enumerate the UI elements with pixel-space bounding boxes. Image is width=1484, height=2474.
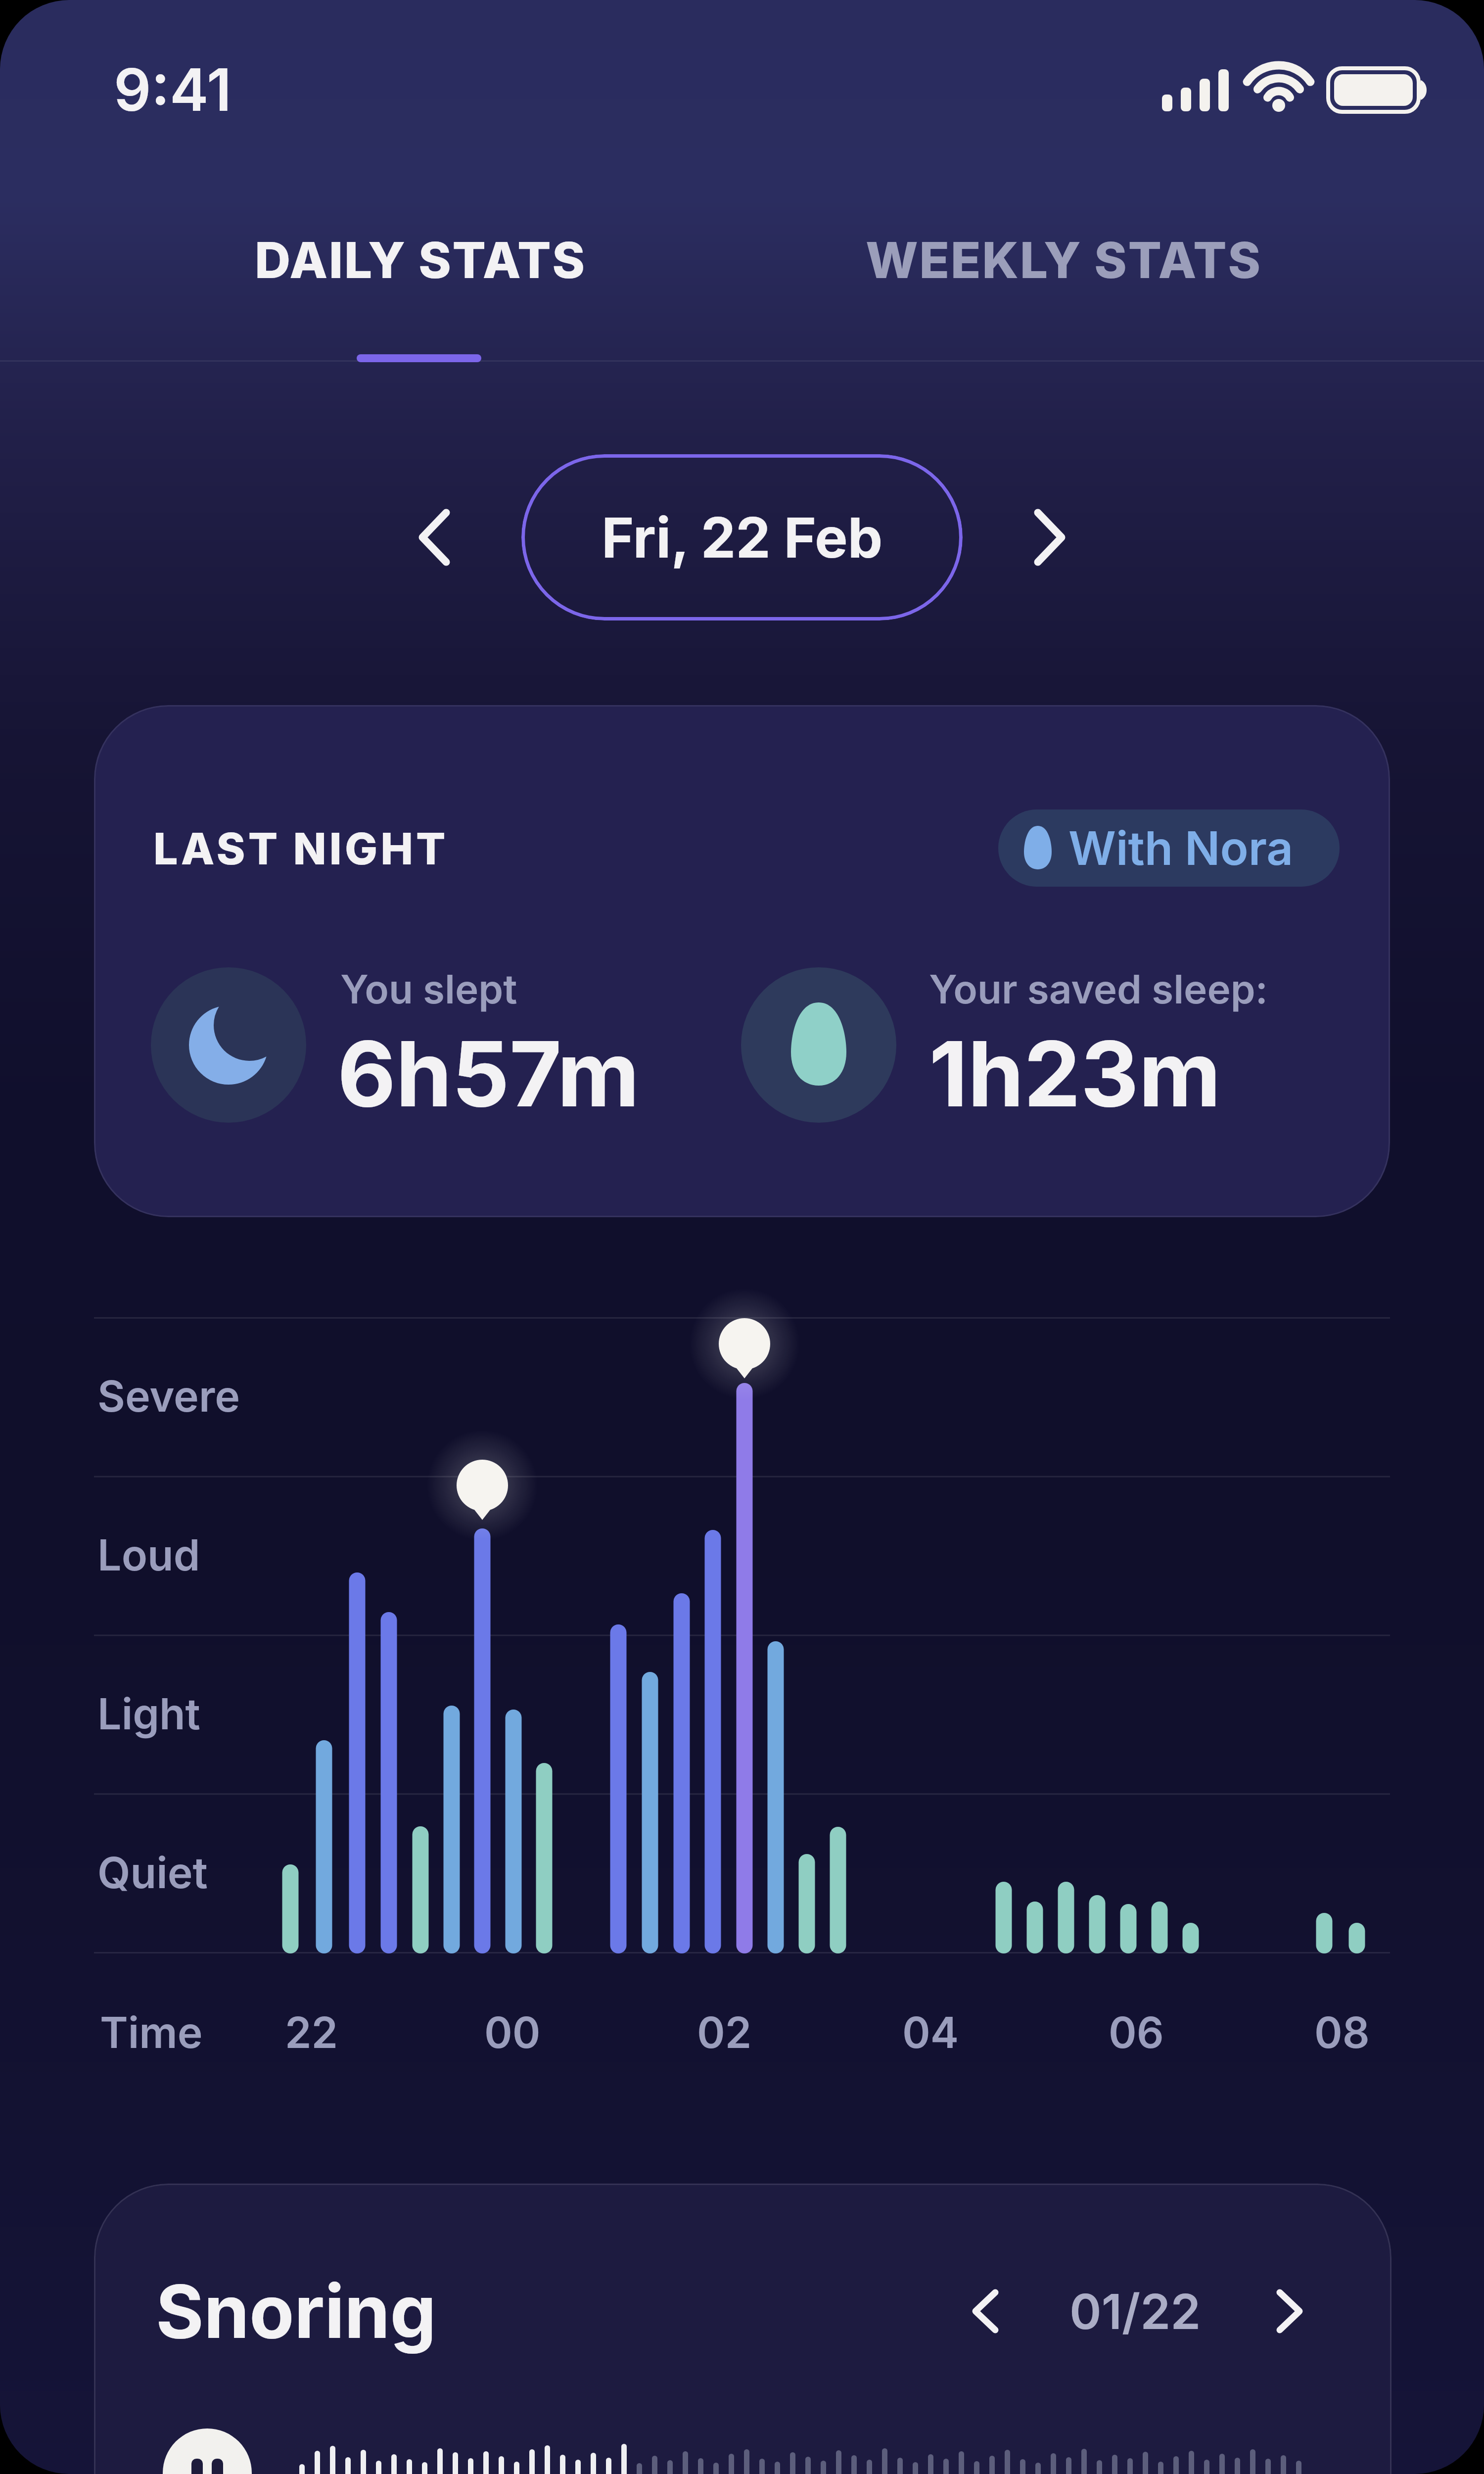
staticText: WEEKLY STATS [866, 230, 1262, 290]
button[interactable] [994, 490, 1093, 589]
staticText: 9:41 [114, 54, 232, 124]
staticText: Your saved sleep: [929, 965, 1268, 1013]
staticText: You slept [340, 965, 517, 1013]
staticText: 00 [484, 2007, 541, 2058]
staticText: DAILY STATS [255, 230, 586, 290]
staticText: 08 [1314, 2007, 1370, 2058]
button[interactable]: WEEKLY STATS [816, 225, 1311, 294]
staticText: 02 [697, 2007, 752, 2058]
staticText: 6h57m [337, 1019, 640, 1128]
staticText: LAST NIGHT [153, 822, 449, 875]
staticText: 22 [285, 2007, 338, 2058]
button[interactable] [1247, 2261, 1336, 2360]
staticText: Quiet [97, 1847, 208, 1899]
staticText: 1h23m [929, 1019, 1221, 1128]
staticText: Severe [97, 1371, 240, 1422]
button[interactable]: DAILY STATS [173, 225, 668, 294]
staticText: 01/22 [1069, 2282, 1201, 2341]
staticText: 06 [1109, 2007, 1164, 2058]
staticText: Loud [97, 1529, 200, 1581]
staticText: Light [97, 1688, 200, 1740]
staticText: Time [100, 2007, 203, 2058]
staticText: Fri, 22 Feb [602, 504, 883, 571]
staticText: Snoring [156, 2267, 436, 2356]
button[interactable] [163, 2428, 252, 2474]
button[interactable] [521, 454, 963, 620]
button[interactable] [940, 2261, 1029, 2360]
staticText: With Nora [1068, 820, 1294, 876]
staticText: 04 [902, 2007, 959, 2058]
button[interactable] [998, 809, 1340, 887]
button[interactable] [391, 490, 490, 589]
